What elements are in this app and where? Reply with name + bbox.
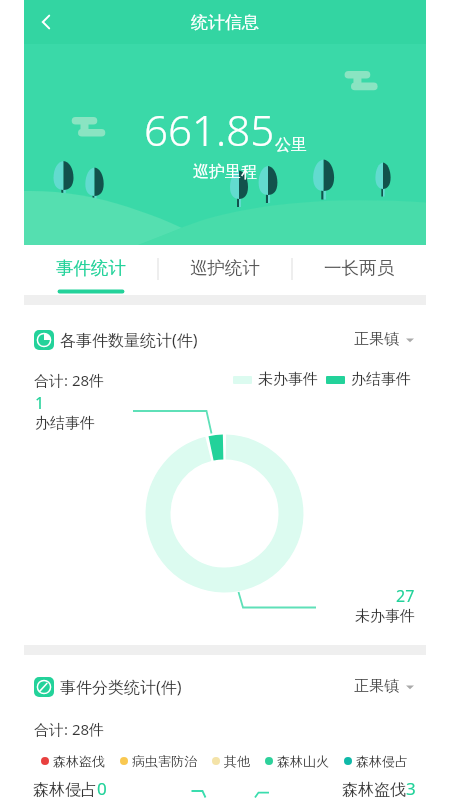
- staticText: 事件统计: [56, 257, 126, 279]
- button[interactable]: 一长两员: [292, 248, 426, 288]
- staticText: 各事件数量统计(件): [60, 329, 198, 351]
- staticText: 森林盗伐: [342, 780, 406, 800]
- button[interactable]: 巡护统计: [158, 248, 292, 288]
- staticText: 一长两员: [324, 257, 394, 279]
- button[interactable]: Back: [24, 0, 68, 44]
- staticText: 巡护统计: [190, 257, 260, 279]
- staticText: 合计: 28件: [34, 719, 105, 739]
- staticText: 森林侵占: [33, 780, 97, 800]
- staticText: 统计信息: [191, 12, 259, 33]
- button[interactable]: 事件统计: [24, 248, 158, 288]
- staticText: 未办事件: [258, 370, 318, 389]
- staticText: 其他: [224, 753, 250, 769]
- staticText: 27: [396, 585, 415, 607]
- staticText: 森林侵占: [356, 753, 408, 769]
- staticText: 未办事件: [355, 607, 415, 626]
- button[interactable]: 正果镇: [354, 330, 414, 349]
- staticText: 森林山火: [277, 753, 329, 769]
- staticText: 661.85: [144, 101, 275, 158]
- staticText: 巡护里程: [193, 162, 257, 182]
- staticText: 0: [97, 777, 107, 800]
- staticText: 正果镇: [354, 330, 399, 349]
- staticText: 正果镇: [354, 677, 399, 696]
- staticText: 病虫害防治: [132, 753, 197, 769]
- staticText: 事件分类统计(件): [60, 676, 182, 698]
- staticText: 办结事件: [351, 370, 411, 389]
- button[interactable]: 正果镇: [354, 677, 414, 696]
- staticText: 森林盗伐: [53, 753, 105, 769]
- staticText: 1: [35, 392, 45, 414]
- staticText: 合计: 28件: [34, 370, 105, 390]
- staticText: 公里: [275, 135, 307, 155]
- staticText: 办结事件: [35, 414, 95, 433]
- staticText: 3: [406, 777, 416, 800]
